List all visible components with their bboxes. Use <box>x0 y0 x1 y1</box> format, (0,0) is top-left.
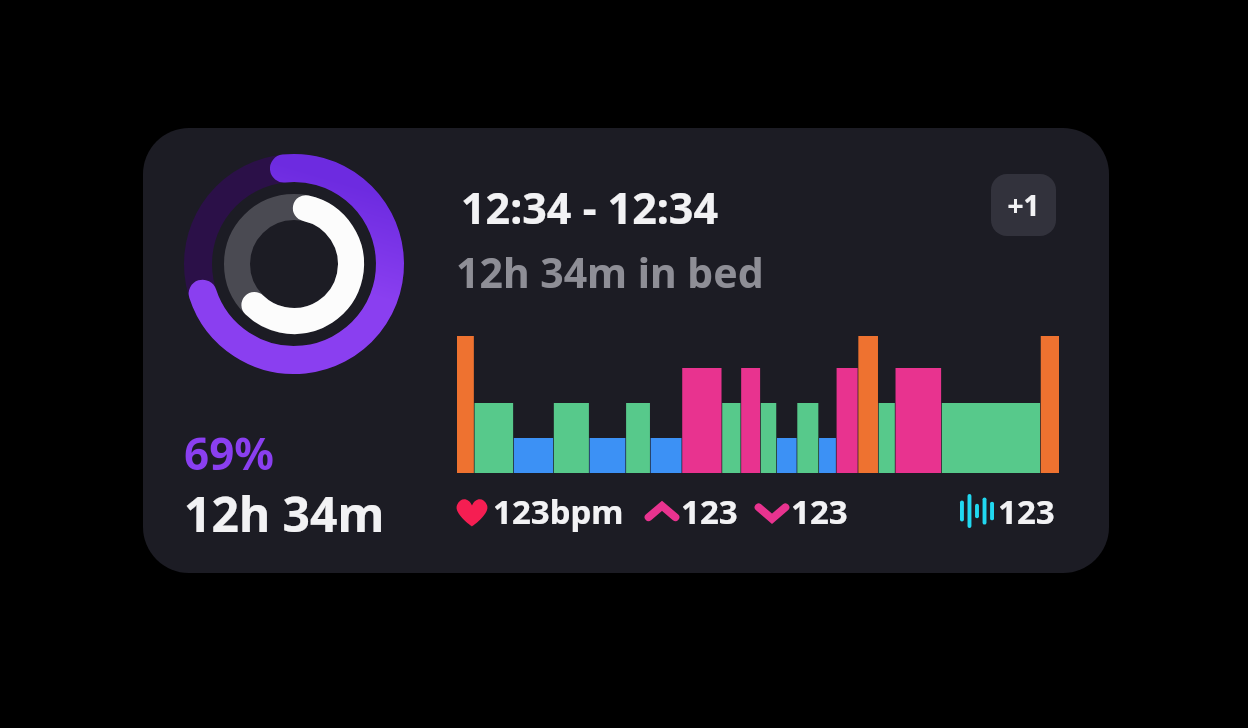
other: Heart rate <box>455 496 489 528</box>
staticText: 123bpm <box>493 489 624 534</box>
button[interactable]: Snoring <box>960 486 1055 536</box>
staticText: 123 <box>681 489 738 534</box>
button[interactable]: 69% <box>143 128 1109 573</box>
staticText: +1 <box>1007 186 1040 224</box>
other: Minimum heart rate <box>756 499 788 525</box>
staticText: 123 <box>998 489 1055 534</box>
staticText: 69% <box>184 423 275 483</box>
staticText: 12h 34m in bed <box>456 244 764 300</box>
other: Maximum heart rate <box>646 499 678 525</box>
staticText: 12h 34m <box>184 481 385 546</box>
button[interactable]: Maximum heart rate <box>646 489 738 534</box>
button[interactable]: Heart rate <box>455 489 624 534</box>
other: Snoring <box>960 494 994 528</box>
button[interactable]: +1 <box>991 174 1056 236</box>
staticText: 123 <box>791 489 848 534</box>
staticText: 12:34 - 12:34 <box>461 178 719 237</box>
button[interactable]: Minimum heart rate <box>756 489 848 534</box>
